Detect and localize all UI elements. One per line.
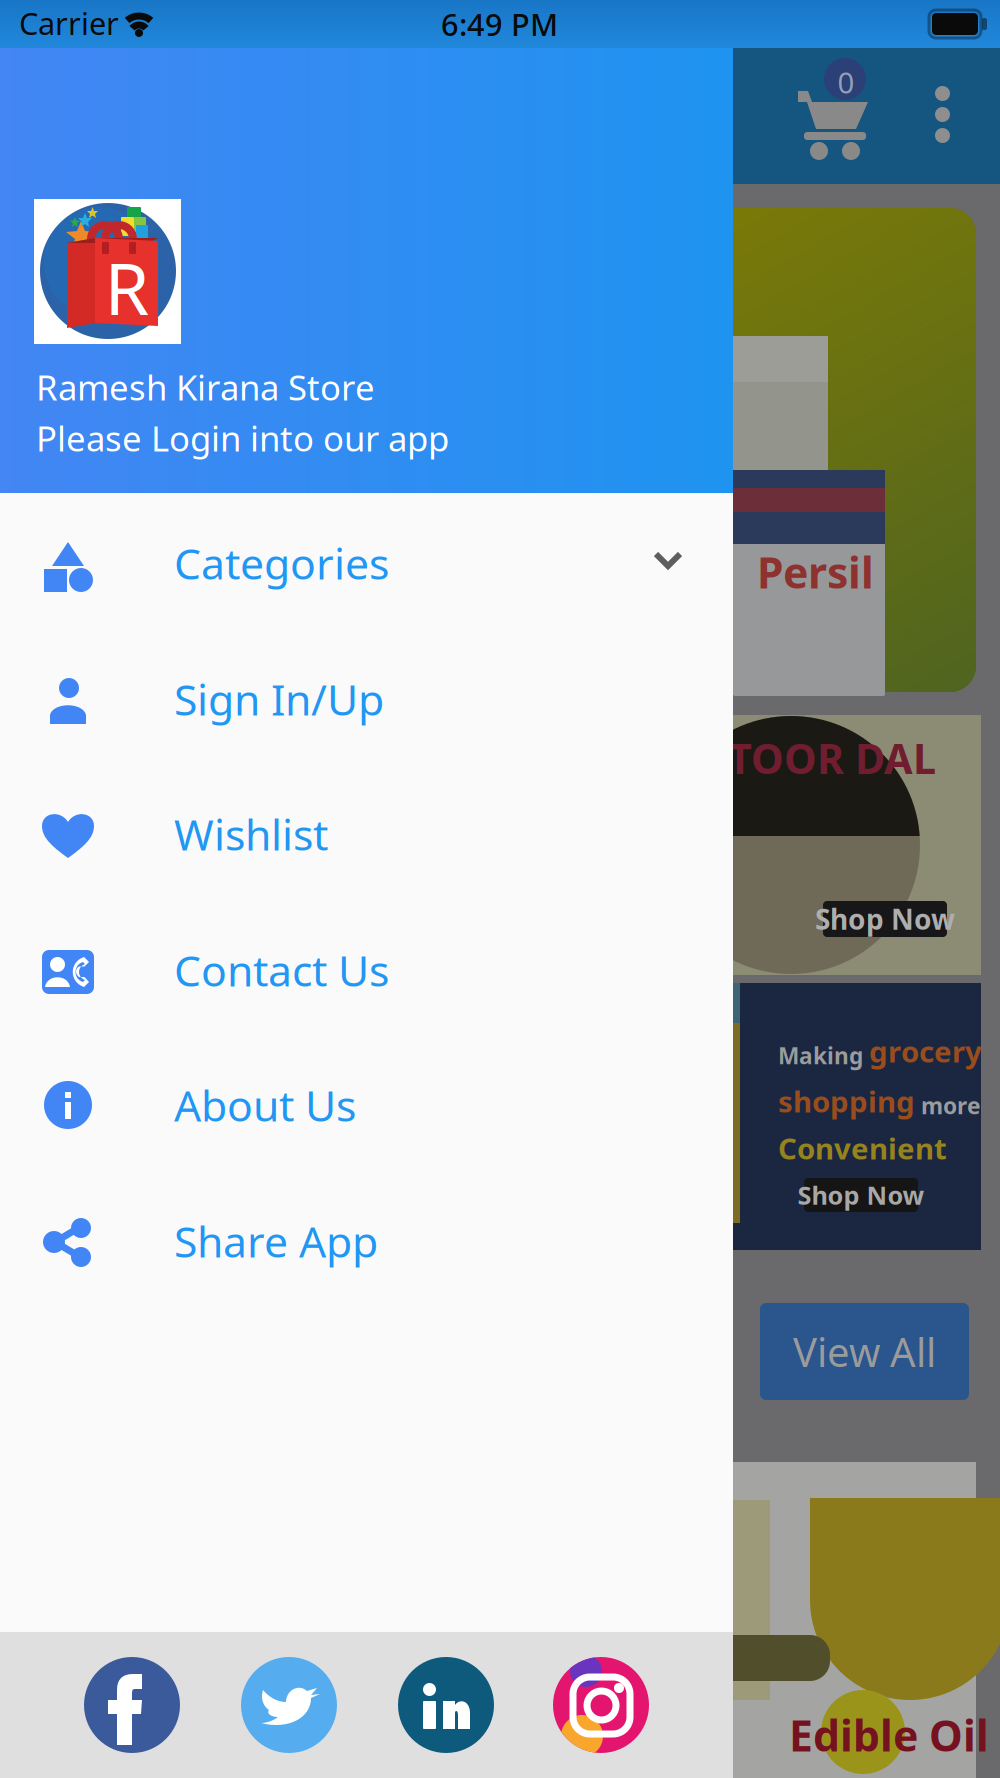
staticText: About Us [174, 1077, 356, 1133]
button[interactable]: Wishlist [0, 768, 733, 903]
button[interactable]: Categories [0, 497, 733, 632]
button[interactable]: View All [760, 1303, 969, 1400]
staticText: Categories [174, 535, 389, 591]
staticText: 6:49 PM [441, 4, 558, 44]
button[interactable]: More options [920, 86, 966, 142]
staticText: TOOR DAL [728, 731, 936, 785]
staticText: Edible Oil [789, 1707, 989, 1763]
staticText: 0 [837, 62, 854, 101]
staticText: grocery [869, 1031, 982, 1070]
staticText: Sign In/Up [174, 671, 384, 727]
staticText: more [921, 1090, 981, 1120]
staticText: R [104, 239, 149, 335]
button[interactable]: Contact Us [0, 904, 733, 1039]
staticText: Share App [174, 1213, 378, 1269]
staticText: Carrier [19, 3, 119, 43]
button[interactable]: Sign In/Up [0, 633, 733, 768]
staticText: shopping [778, 1081, 915, 1120]
staticText: Please Login into our app [36, 415, 449, 461]
button[interactable]: Instagram [553, 1657, 649, 1753]
button[interactable]: About Us [0, 1039, 733, 1174]
button[interactable]: Facebook [84, 1657, 180, 1753]
staticText: Wishlist [174, 806, 328, 862]
staticText: Convenient [778, 1128, 947, 1167]
button[interactable]: Twitter [241, 1657, 337, 1753]
button[interactable]: Cart [790, 66, 880, 152]
button[interactable]: Share App [0, 1175, 733, 1310]
staticText: Persil [757, 544, 874, 600]
staticText: Ramesh Kirana Store [36, 364, 375, 410]
button[interactable]: LinkedIn [398, 1657, 494, 1753]
staticText: Contact Us [174, 942, 389, 998]
staticText: View All [793, 1325, 936, 1378]
staticText: Shop Now [797, 1178, 924, 1212]
staticText: Shop Now [815, 900, 955, 938]
staticText: Making [778, 1040, 863, 1070]
